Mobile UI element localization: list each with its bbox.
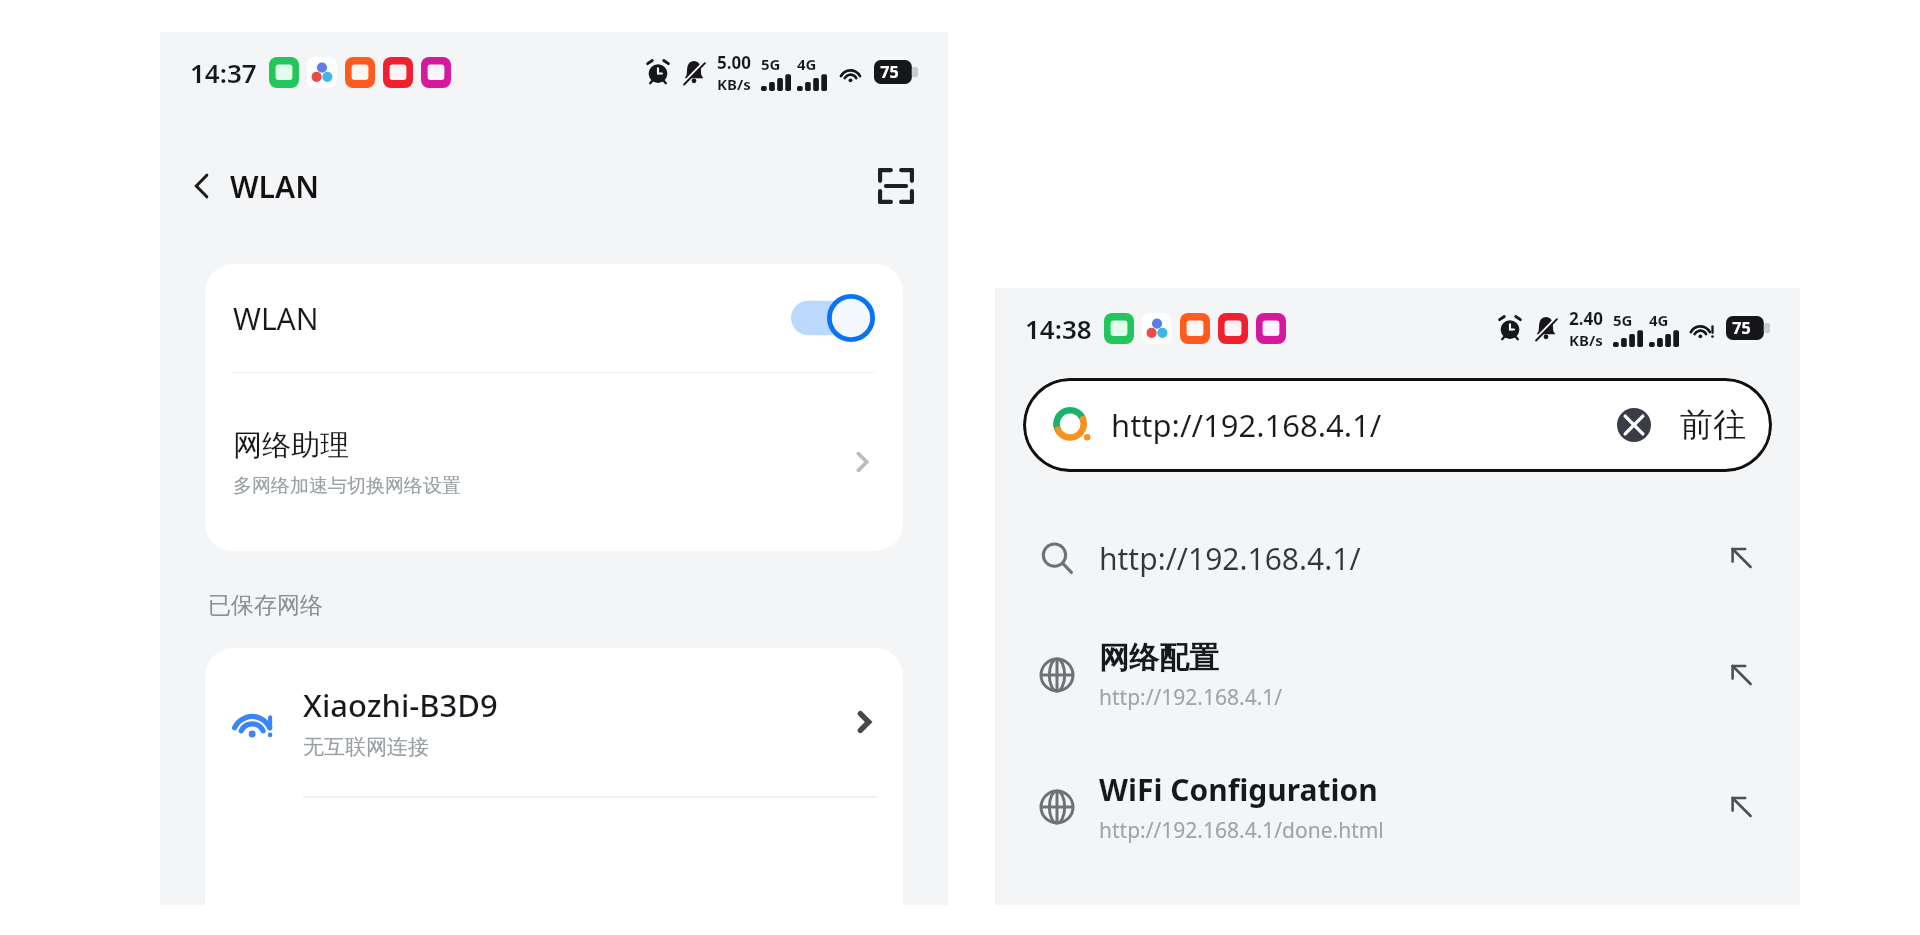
- staticText: 网络助理: [233, 427, 349, 464]
- staticText: 已保存网络: [208, 591, 323, 620]
- staticText: WLAN: [230, 166, 319, 207]
- staticText: http://192.168.4.1/: [1099, 538, 1361, 579]
- staticText: KB/s: [717, 74, 751, 94]
- staticText: 5.00: [717, 51, 751, 74]
- staticText: 75: [880, 61, 899, 83]
- button[interactable]: Clear: [1612, 403, 1656, 447]
- button[interactable]: 网络配置: [995, 622, 1800, 728]
- staticText: http://192.168.4.1/: [1111, 404, 1382, 446]
- button[interactable]: WiFi Configuration: [995, 754, 1800, 860]
- staticText: 多网络加速与切换网络设置: [233, 474, 461, 498]
- staticText: 无互联网连接: [303, 734, 429, 760]
- staticText: 前往: [1680, 404, 1746, 446]
- staticText: 2.40: [1569, 307, 1603, 330]
- staticText: 4G: [1649, 310, 1669, 330]
- staticText: http://192.168.4.1/done.html: [1099, 816, 1384, 845]
- button[interactable]: http://192.168.4.1/: [1023, 378, 1772, 472]
- staticText: Xiaozhi-B3D9: [303, 684, 498, 726]
- button[interactable]: Xiaozhi-B3D9: [205, 648, 903, 796]
- button[interactable]: WLAN: [205, 264, 903, 372]
- staticText: http://192.168.4.1/: [1099, 683, 1283, 712]
- staticText: 14:38: [1025, 311, 1092, 346]
- button[interactable]: 前往: [1680, 404, 1746, 446]
- staticText: KB/s: [1569, 330, 1603, 350]
- staticText: 5G: [1613, 310, 1633, 330]
- button[interactable]: 网络助理: [205, 373, 903, 551]
- button[interactable]: Scan QR code: [866, 156, 926, 216]
- button[interactable]: WLAN toggle: [791, 294, 875, 342]
- staticText: 75: [1732, 317, 1751, 339]
- button[interactable]: http://192.168.4.1/: [995, 512, 1800, 604]
- staticText: WiFi Configuration: [1099, 769, 1378, 810]
- staticText: 5G: [761, 54, 781, 74]
- staticText: WLAN: [233, 298, 319, 339]
- staticText: 14:37: [190, 55, 257, 90]
- staticText: 4G: [797, 54, 817, 74]
- button[interactable]: Back: [174, 158, 230, 214]
- staticText: 网络配置: [1099, 639, 1219, 677]
